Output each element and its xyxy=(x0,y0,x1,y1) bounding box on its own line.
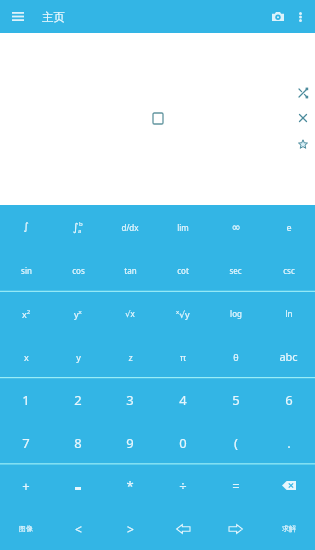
staticText: 图像 xyxy=(19,524,33,533)
button[interactable]: + xyxy=(0,464,52,507)
staticText: 8 xyxy=(74,434,82,452)
staticText: cos xyxy=(72,265,85,276)
button[interactable]: 0 xyxy=(156,421,209,464)
staticText: d/dx xyxy=(121,222,139,233)
staticText: z xyxy=(128,351,133,363)
button[interactable]: csc xyxy=(262,249,315,292)
button[interactable]: = xyxy=(209,464,262,507)
button[interactable]: > xyxy=(104,507,156,550)
button[interactable]: More options xyxy=(285,0,315,33)
button[interactable] xyxy=(156,507,209,550)
button[interactable] xyxy=(209,507,262,550)
staticText: x√y xyxy=(176,308,190,320)
staticText: 1 xyxy=(22,391,30,409)
button[interactable]: yx xyxy=(52,292,104,335)
staticText: . xyxy=(287,434,291,452)
staticText: lim xyxy=(177,222,189,233)
staticText: 2 xyxy=(74,391,82,409)
button[interactable]: x√y xyxy=(156,292,209,335)
staticText: ∞ xyxy=(231,221,241,234)
staticText: x xyxy=(24,351,29,363)
button[interactable]: e xyxy=(262,205,315,249)
button[interactable]: cos xyxy=(52,249,104,292)
button[interactable]: π xyxy=(156,335,209,378)
button[interactable]: 8 xyxy=(52,421,104,464)
button[interactable]: 7 xyxy=(0,421,52,464)
staticText: ( xyxy=(234,434,238,452)
staticText: cot xyxy=(177,265,189,276)
button[interactable]: Favorite xyxy=(292,133,314,155)
staticText: ÷ xyxy=(179,477,187,495)
button[interactable]: ÷ xyxy=(156,464,209,507)
staticText: x2 xyxy=(22,308,31,320)
staticText: 7 xyxy=(22,434,30,452)
button[interactable]: 9 xyxy=(104,421,156,464)
button[interactable]: √x xyxy=(104,292,156,335)
staticText: csc xyxy=(283,265,295,276)
staticText: + xyxy=(22,477,30,495)
staticText: y xyxy=(76,351,81,363)
button[interactable]: abc xyxy=(262,335,315,378)
button[interactable]: ∫ xyxy=(0,205,52,249)
button[interactable]: * xyxy=(104,464,156,507)
button[interactable]: sec xyxy=(209,249,262,292)
staticText: 主页 xyxy=(42,10,65,24)
button[interactable]: tan xyxy=(104,249,156,292)
button[interactable]: Camera xyxy=(271,0,285,33)
staticText: ∫ xyxy=(73,221,79,234)
button[interactable]: 求解 xyxy=(262,507,315,550)
staticText: b xyxy=(79,220,83,228)
staticText: log xyxy=(230,308,242,319)
button[interactable]: . xyxy=(262,421,315,464)
button[interactable]: 4 xyxy=(156,378,209,421)
button[interactable]: 2 xyxy=(52,378,104,421)
button[interactable]: ln xyxy=(262,292,315,335)
staticText: θ xyxy=(233,351,239,363)
button[interactable]: ∞ xyxy=(209,205,262,249)
button[interactable]: 图像 xyxy=(0,507,52,550)
staticText: yx xyxy=(74,308,82,320)
staticText: < xyxy=(75,521,82,537)
button[interactable]: Menu xyxy=(1,0,35,33)
button[interactable]: lim xyxy=(156,205,209,249)
button[interactable]: z xyxy=(104,335,156,378)
button[interactable]: 6 xyxy=(262,378,315,421)
staticText: > xyxy=(127,521,134,537)
button[interactable]: log xyxy=(209,292,262,335)
button[interactable]: Shuffle xyxy=(292,82,314,104)
staticText: = xyxy=(232,477,240,495)
staticText: 3 xyxy=(126,391,134,409)
button[interactable]: ∫ xyxy=(52,205,104,249)
staticText: e xyxy=(286,221,292,233)
staticText: sec xyxy=(229,265,242,276)
button[interactable] xyxy=(262,464,315,507)
staticText: π xyxy=(180,351,186,363)
button[interactable]: y xyxy=(52,335,104,378)
staticText: 5 xyxy=(232,391,240,409)
staticText: abc xyxy=(279,349,298,364)
button[interactable]: d/dx xyxy=(104,205,156,249)
button[interactable]: sin xyxy=(0,249,52,292)
staticText: ln xyxy=(285,308,293,319)
staticText: √x xyxy=(125,308,135,319)
staticText: tan xyxy=(124,265,137,276)
staticText: 0 xyxy=(179,434,187,452)
button[interactable] xyxy=(52,464,104,507)
button[interactable]: 3 xyxy=(104,378,156,421)
staticText: 9 xyxy=(126,434,134,452)
button[interactable]: 5 xyxy=(209,378,262,421)
staticText: ∫ xyxy=(23,221,29,233)
staticText: sin xyxy=(21,265,32,276)
staticText: 求解 xyxy=(282,524,296,533)
button[interactable]: < xyxy=(52,507,104,550)
staticText: a xyxy=(78,227,82,235)
button[interactable]: x2 xyxy=(0,292,52,335)
button[interactable]: θ xyxy=(209,335,262,378)
button[interactable]: cot xyxy=(156,249,209,292)
button[interactable]: x xyxy=(0,335,52,378)
button[interactable]: 1 xyxy=(0,378,52,421)
staticText: 4 xyxy=(179,391,187,409)
button[interactable]: ( xyxy=(209,421,262,464)
button[interactable]: Clear xyxy=(292,107,314,129)
staticText: * xyxy=(126,477,134,495)
